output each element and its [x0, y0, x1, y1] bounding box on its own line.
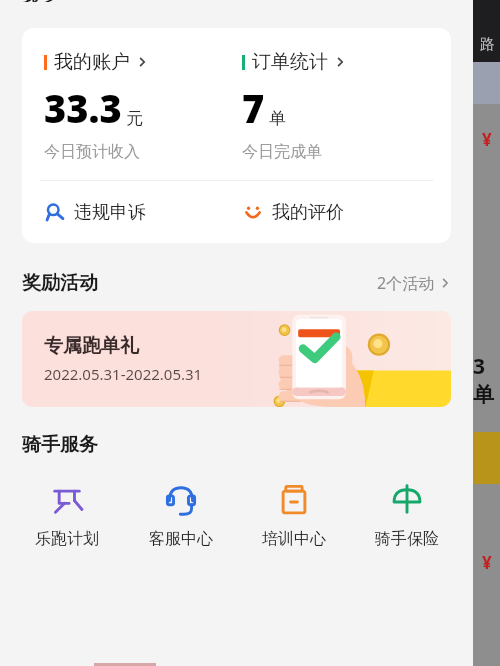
button[interactable]: 骑手保险: [350, 483, 463, 549]
staticText: 7: [242, 82, 265, 134]
button[interactable]: 我的账户: [44, 50, 236, 162]
staticText: 路: [480, 35, 495, 54]
staticText: 今日预计收入: [44, 142, 140, 162]
button[interactable]: 订单统计: [242, 50, 451, 162]
staticText: 3单: [473, 352, 500, 404]
staticText: 骑手服务: [22, 433, 98, 457]
button[interactable]: 2个活动: [377, 272, 451, 294]
staticText: 元: [126, 108, 143, 129]
staticText: 33.3: [44, 82, 122, 134]
staticText: 我的账户: [54, 50, 130, 74]
staticText: ¥: [482, 128, 492, 151]
button[interactable]: 专属跑单礼: [22, 311, 451, 407]
staticText: 2022.05.31-2022.05.31: [44, 364, 203, 384]
staticText: 我 >: [22, 0, 54, 2]
button[interactable]: 培训中心: [237, 483, 350, 549]
staticText: 2个活动: [377, 272, 435, 294]
staticText: 今日完成单: [242, 142, 322, 162]
button[interactable]: 客服中心: [124, 483, 237, 549]
staticText: 骑手保险: [375, 529, 439, 549]
button[interactable]: 乐跑计划: [10, 483, 124, 549]
button[interactable]: 违规申诉: [44, 181, 236, 243]
staticText: 乐跑计划: [35, 529, 99, 549]
staticText: 奖励活动: [22, 271, 98, 295]
staticText: 我的评价: [272, 201, 344, 224]
staticText: 培训中心: [262, 529, 326, 549]
button[interactable]: 我的评价: [242, 181, 451, 243]
staticText: 专属跑单礼: [44, 334, 139, 358]
staticText: 违规申诉: [74, 201, 146, 224]
staticText: ¥: [482, 551, 492, 574]
staticText: 客服中心: [149, 529, 213, 549]
staticText: 订单统计: [252, 50, 328, 74]
staticText: 单: [269, 108, 286, 129]
